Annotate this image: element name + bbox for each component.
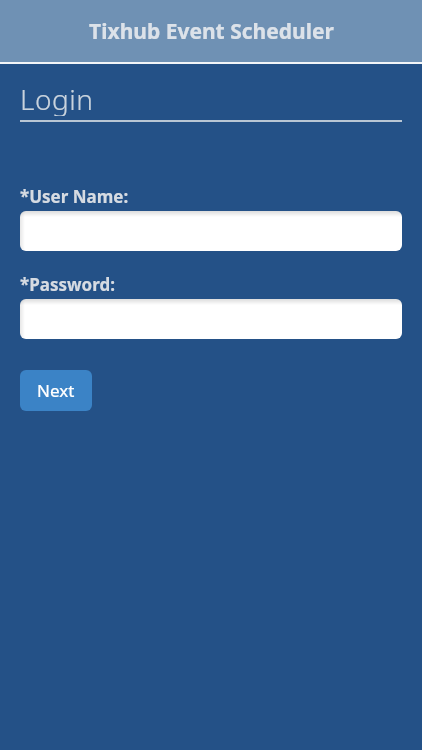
staticText: *User Name: (20, 185, 129, 205)
button[interactable]: Password input field (20, 299, 402, 339)
staticText: Login (20, 80, 94, 116)
button[interactable]: Next (20, 370, 92, 411)
button[interactable]: User Name input field (20, 211, 402, 251)
staticText: *Password: (20, 273, 115, 293)
staticText: Next (37, 379, 75, 402)
staticText: Tixhub Event Scheduler (89, 17, 334, 46)
